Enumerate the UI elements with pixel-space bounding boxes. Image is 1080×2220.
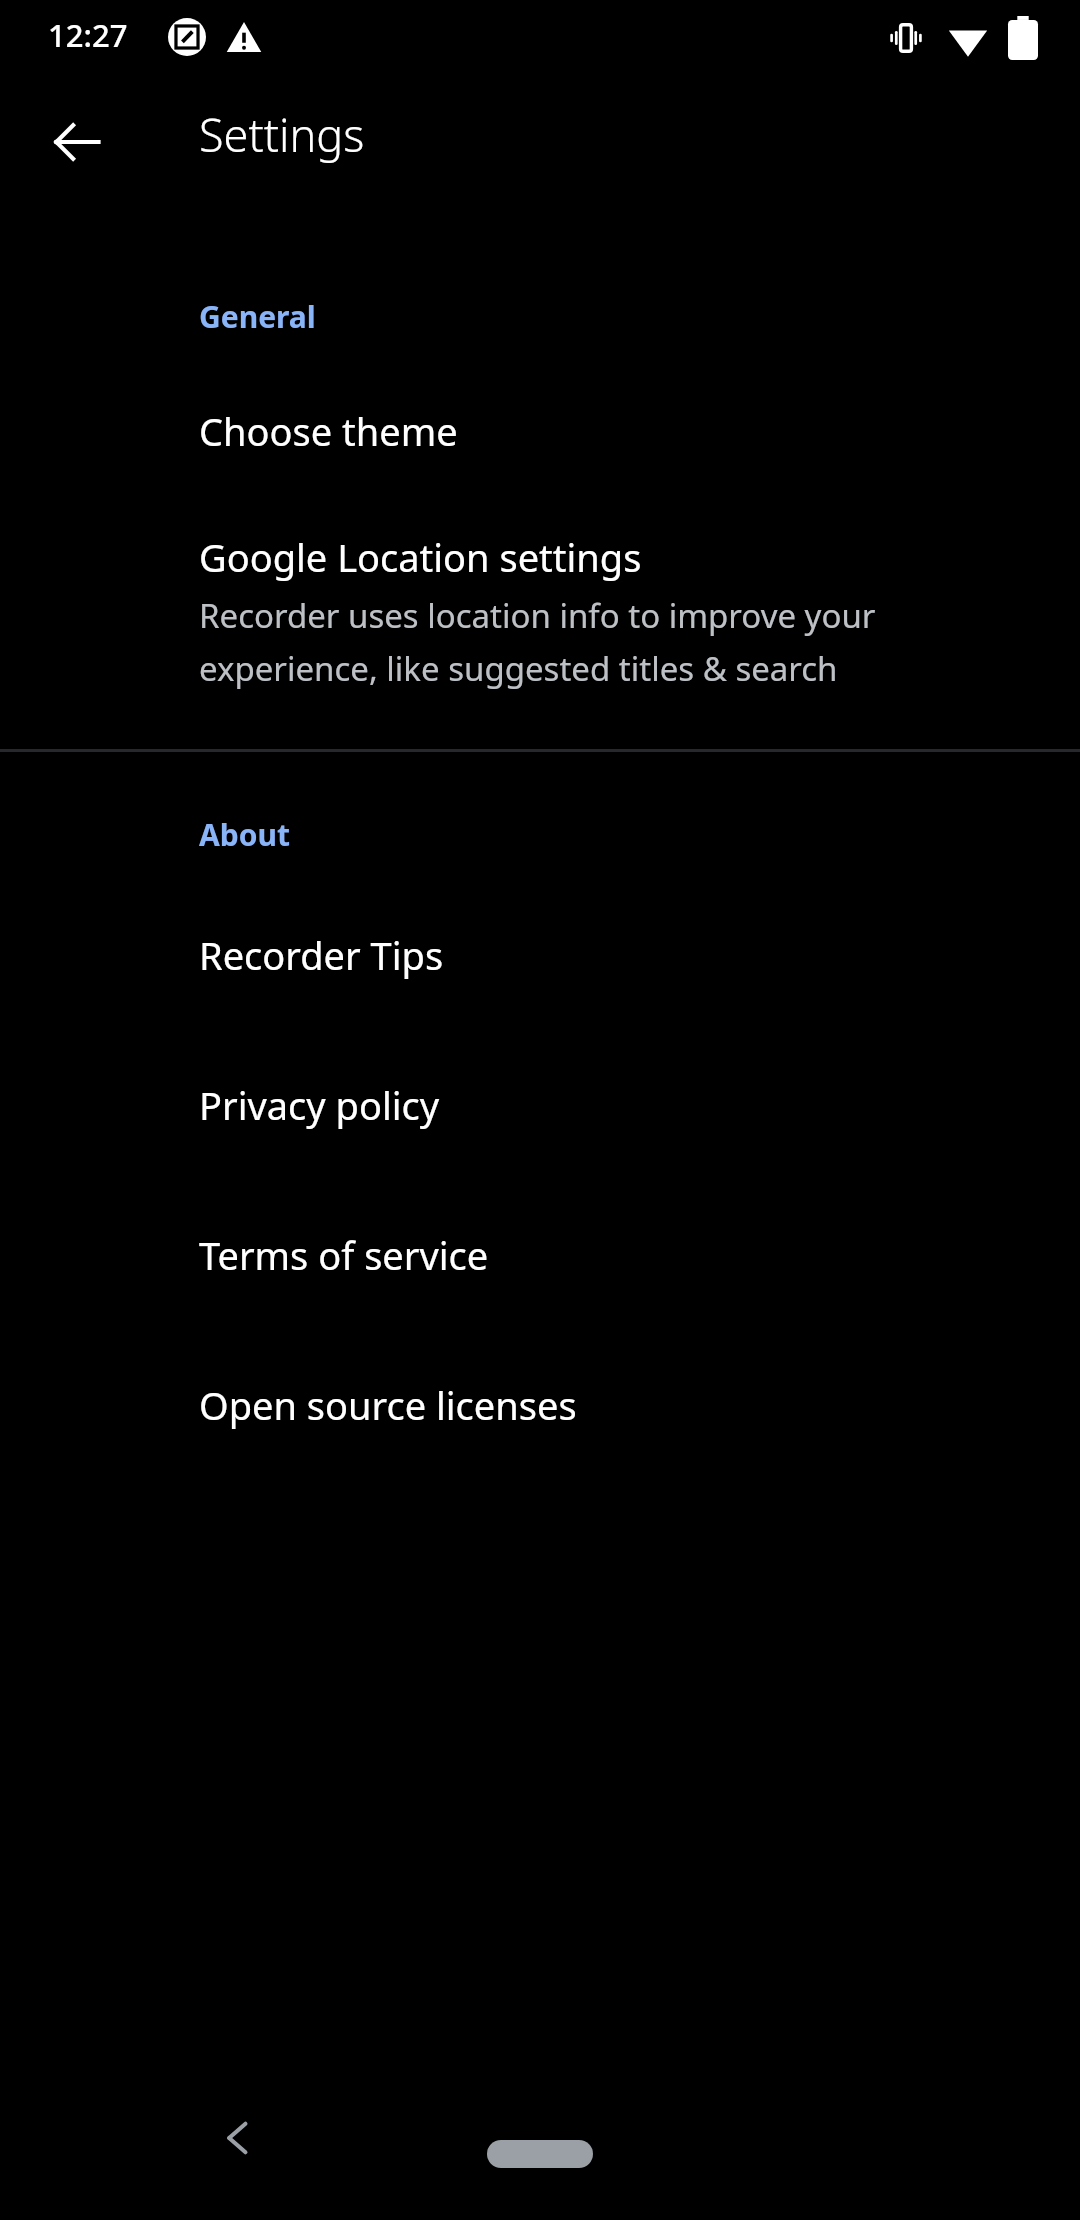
staticText: About [199,814,290,855]
button[interactable]: Terms of service [0,1223,1080,1287]
button[interactable]: Recorder Tips [0,923,1080,987]
staticText: Terms of service [199,1229,489,1281]
button[interactable]: Back [190,2090,286,2186]
button[interactable]: Back [29,94,125,190]
button[interactable]: Choose theme [0,399,1080,463]
staticText: Recorder Tips [199,929,444,981]
button[interactable]: Open source licenses [0,1373,1080,1437]
button[interactable]: Privacy policy [0,1073,1080,1137]
button[interactable]: Google Location settings [0,525,1080,697]
staticText: Privacy policy [199,1079,440,1131]
staticText: Settings [199,104,365,165]
staticText: 12:27 [48,14,128,56]
staticText: Open source licenses [199,1379,577,1431]
staticText: Google Location settings [199,531,642,583]
button[interactable]: Home [487,2140,593,2168]
staticText: Recorder uses location info to improve y… [199,593,876,638]
staticText: Choose theme [199,405,458,457]
staticText: experience, like suggested titles & sear… [199,646,838,691]
staticText: General [199,296,316,337]
